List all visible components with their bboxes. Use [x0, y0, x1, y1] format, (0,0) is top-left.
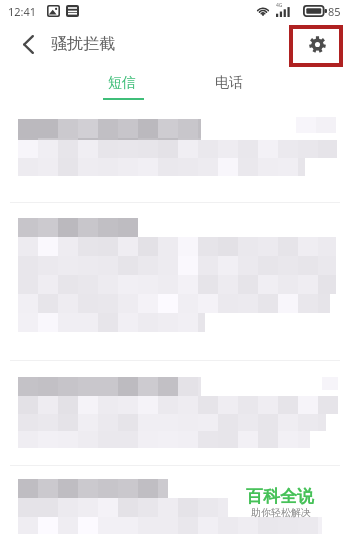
button[interactable]: 短信 [95, 69, 149, 99]
staticText: 85 [328, 4, 341, 19]
staticText: 百科全说 [246, 486, 314, 507]
staticText: 助你轻松解决 [251, 506, 311, 519]
staticText: 4G [276, 2, 283, 9]
staticText: 电话 [215, 74, 243, 92]
button[interactable]: 电话 [202, 69, 256, 99]
button[interactable]: Settings [294, 30, 340, 58]
staticText: 骚扰拦截 [51, 34, 115, 54]
staticText: 短信 [108, 74, 136, 92]
staticText: 12:41 [8, 4, 37, 19]
button[interactable]: Back [16, 32, 40, 57]
